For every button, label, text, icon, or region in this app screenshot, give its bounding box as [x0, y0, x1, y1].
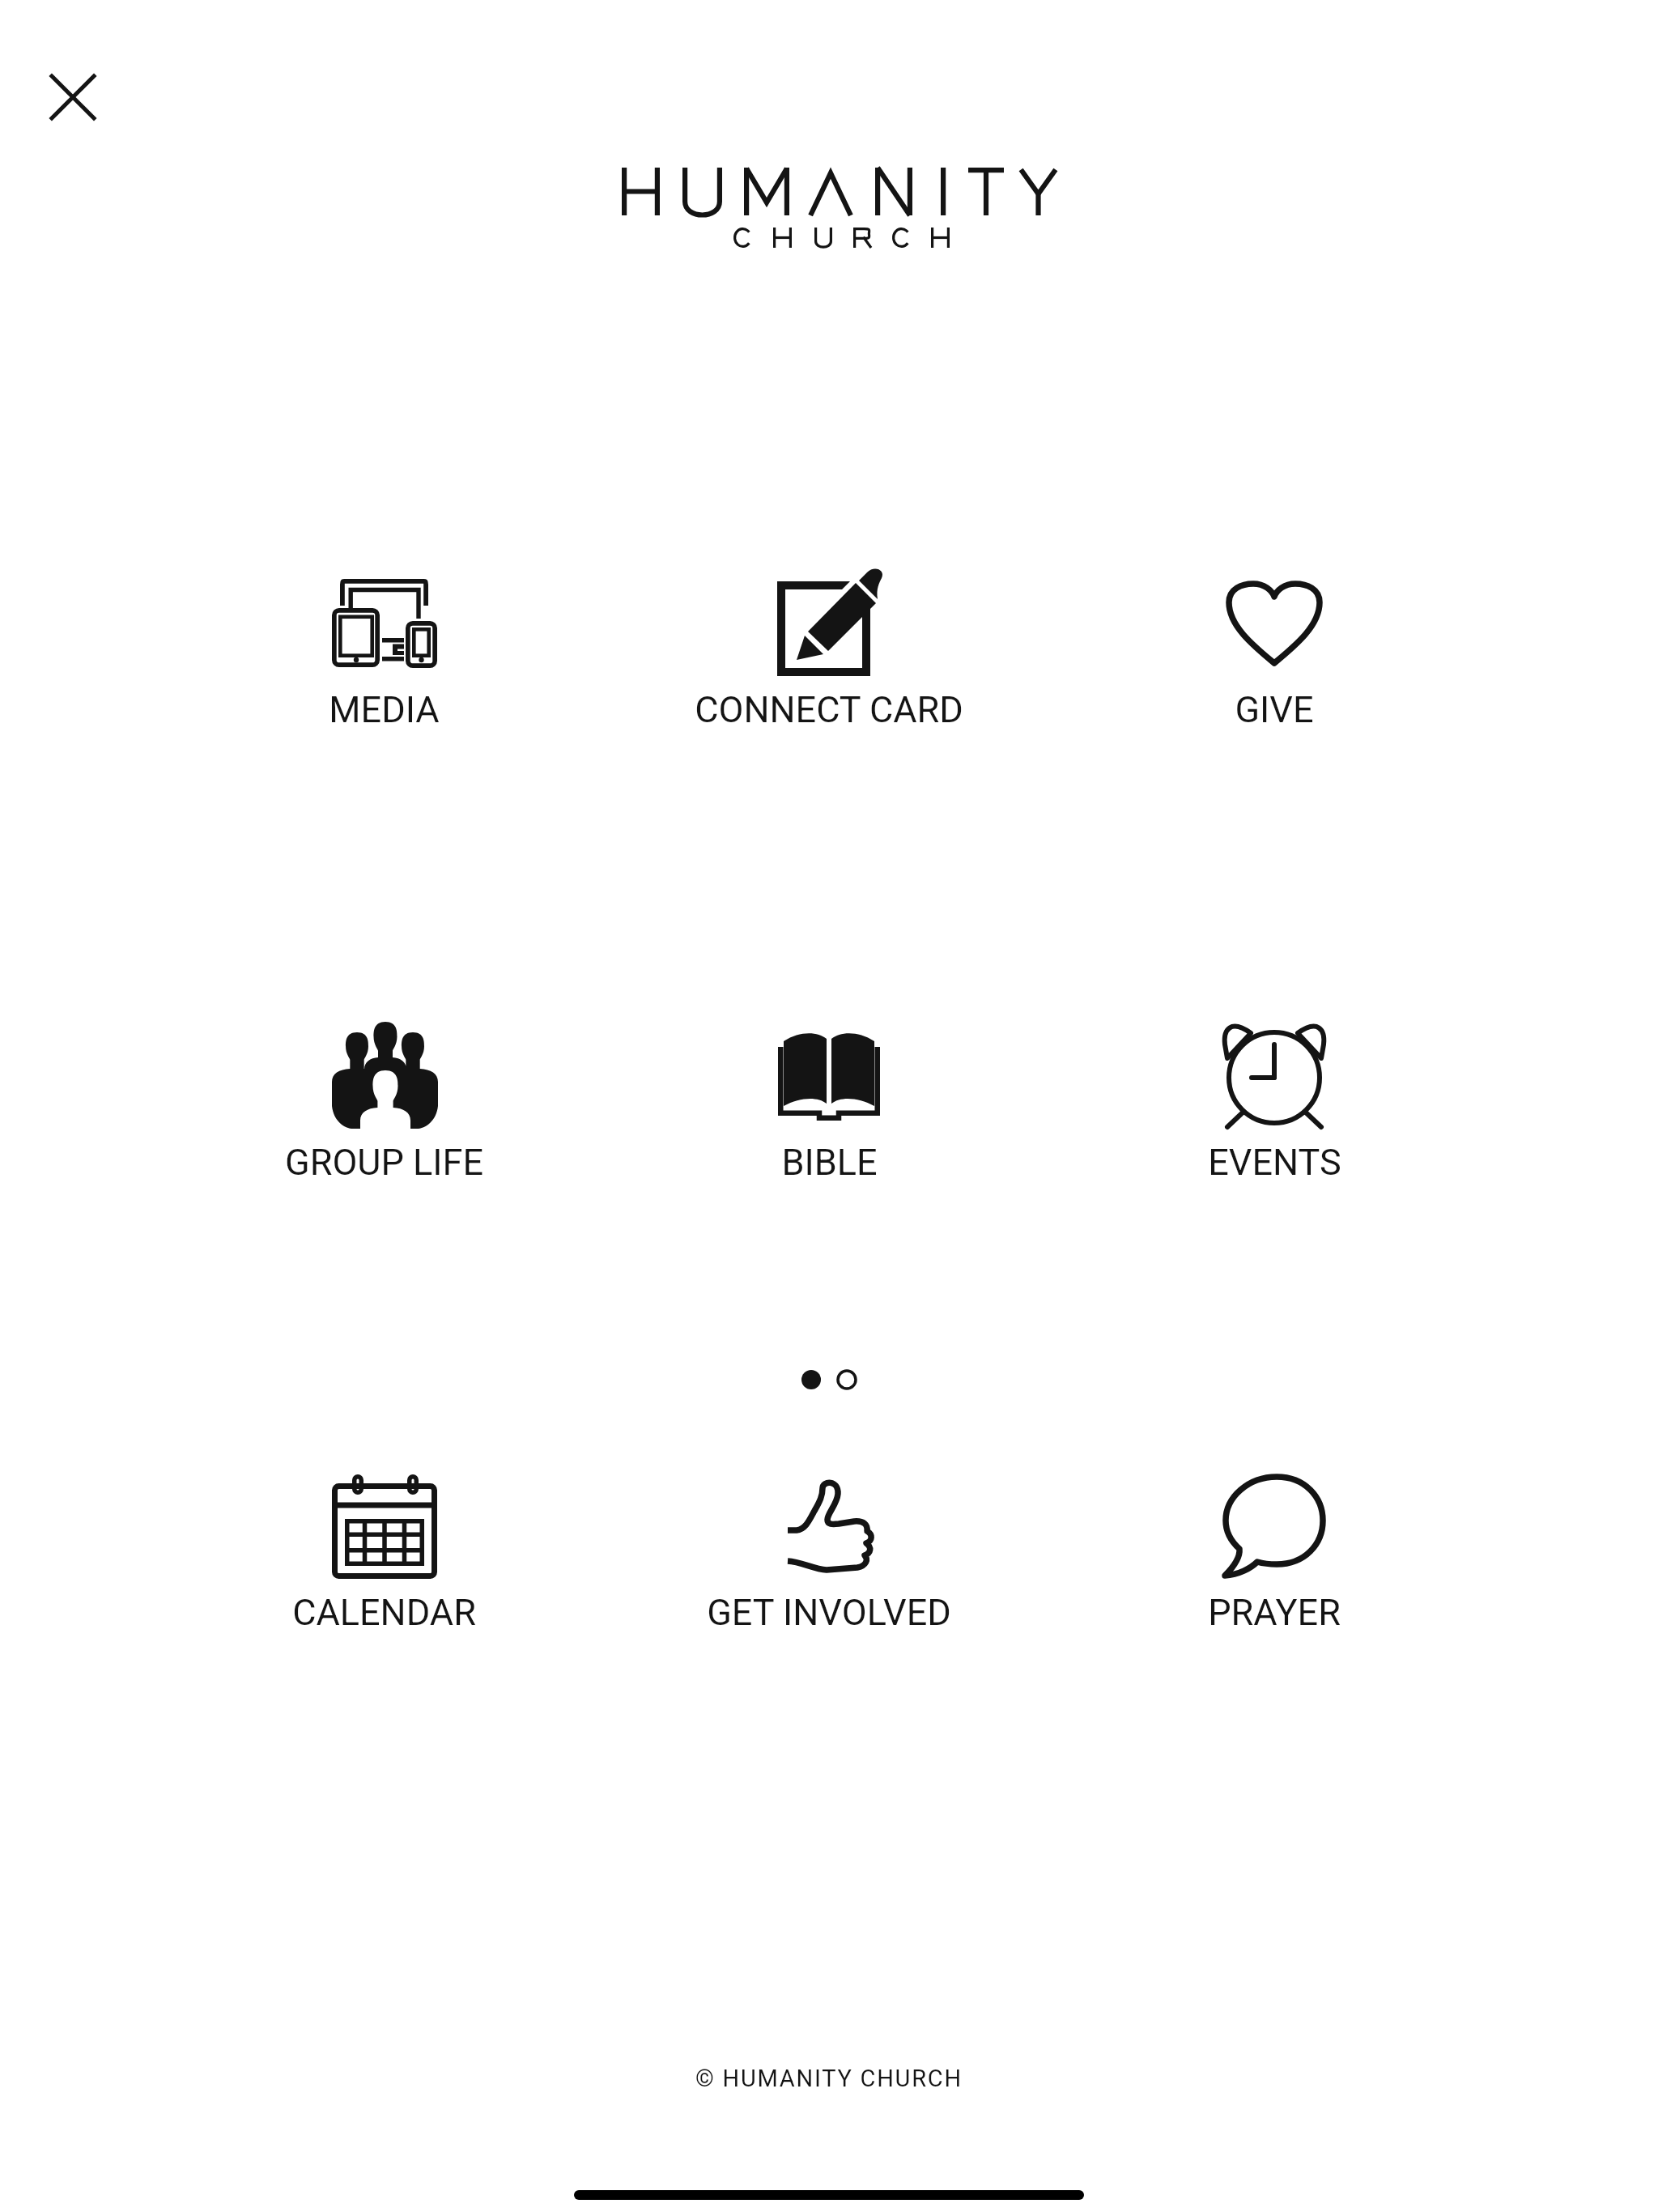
staticText: MEDIA — [329, 688, 440, 731]
button[interactable]: GET INVOLVED — [651, 1472, 1007, 1634]
button[interactable]: Page indicator — [797, 1363, 861, 1396]
button[interactable]: GROUP LIFE — [206, 1022, 562, 1184]
staticText: GET INVOLVED — [707, 1591, 951, 1634]
staticText: BIBLE — [781, 1141, 878, 1184]
button[interactable]: BIBLE — [651, 1022, 1007, 1184]
button[interactable]: GIVE — [1096, 569, 1452, 731]
button[interactable]: CONNECT CARD — [651, 569, 1007, 731]
staticText: EVENTS — [1208, 1141, 1341, 1184]
button[interactable]: PRAYER — [1096, 1472, 1452, 1634]
staticText: GROUP LIFE — [285, 1141, 483, 1184]
button[interactable]: © HUMANITY CHURCH — [695, 2065, 963, 2092]
staticText: PRAYER — [1208, 1591, 1341, 1634]
staticText: GIVE — [1235, 688, 1314, 731]
button[interactable]: Close — [20, 45, 125, 150]
staticText: CALENDAR — [292, 1591, 476, 1634]
staticText: CONNECT CARD — [695, 688, 963, 731]
button[interactable]: CALENDAR — [206, 1472, 562, 1634]
button[interactable]: EVENTS — [1096, 1022, 1452, 1184]
button[interactable]: MEDIA — [206, 569, 562, 731]
